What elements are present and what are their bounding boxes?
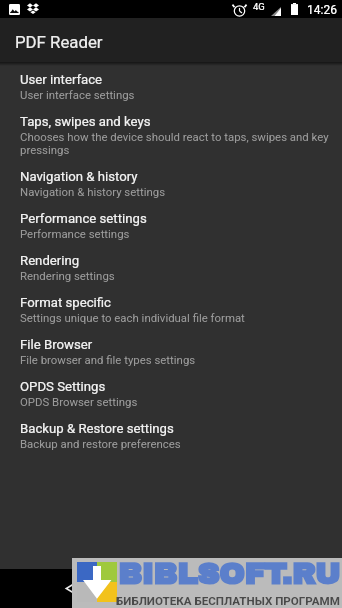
staticText: БИБЛИОТЕКА БЕСПЛАТНЫХ ПРОГРАММ bbox=[116, 594, 340, 608]
staticText: Navigation & history bbox=[20, 168, 138, 185]
button[interactable]: Backup & Restore settings bbox=[0, 414, 342, 456]
staticText: File Browser bbox=[20, 336, 93, 353]
staticText: Rendering settings bbox=[20, 269, 115, 282]
staticText: OPDS Settings bbox=[20, 378, 106, 395]
button[interactable]: Rendering bbox=[0, 246, 342, 288]
staticText: Format specific bbox=[20, 294, 111, 311]
staticText: OPDS Browser settings bbox=[20, 395, 138, 408]
button[interactable]: Format specific bbox=[0, 288, 342, 330]
button[interactable]: User interface bbox=[0, 65, 342, 107]
staticText: 4G bbox=[253, 1, 265, 12]
staticText: User interface bbox=[20, 71, 103, 88]
staticText: BIBLSOFT.RU bbox=[118, 557, 341, 590]
staticText: Rendering bbox=[20, 252, 80, 269]
staticText: Backup and restore preferences bbox=[20, 437, 181, 450]
staticText: File browser and file types settings bbox=[20, 353, 196, 366]
button[interactable]: Back bbox=[59, 575, 85, 601]
staticText: Backup & Restore settings bbox=[20, 420, 174, 437]
button[interactable]: PDF Reader bbox=[0, 18, 342, 62]
button[interactable]: Performance settings bbox=[0, 204, 342, 246]
staticText: User interface settings bbox=[20, 88, 135, 101]
staticText: Chooses how the device should react to t… bbox=[20, 130, 334, 156]
staticText: PDF Reader bbox=[15, 32, 103, 52]
staticText: Settings unique to each individual file … bbox=[20, 311, 245, 324]
staticText: 14:26 bbox=[307, 3, 337, 17]
button[interactable]: Navigation & history bbox=[0, 162, 342, 204]
button[interactable]: Taps, swipes and keys bbox=[0, 107, 342, 162]
staticText: Taps, swipes and keys bbox=[20, 113, 151, 130]
staticText: Navigation & history settings bbox=[20, 185, 166, 198]
staticText: Performance settings bbox=[20, 227, 130, 240]
button[interactable]: OPDS Settings bbox=[0, 372, 342, 414]
button[interactable]: File Browser bbox=[0, 330, 342, 372]
staticText: Performance settings bbox=[20, 210, 147, 227]
